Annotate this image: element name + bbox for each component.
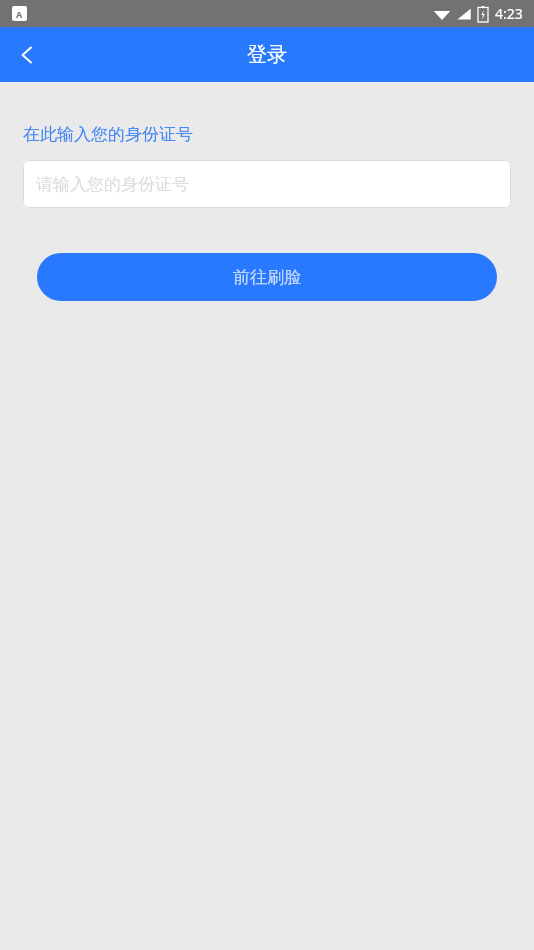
button[interactable]: 前往刷脸 [37, 253, 497, 301]
button[interactable]: Back [0, 28, 54, 82]
staticText: 登录 [247, 42, 287, 67]
staticText: 4:23 [495, 4, 523, 23]
staticText: 请输入您的身份证号 [36, 174, 189, 195]
staticText: 在此输入您的身份证号 [23, 124, 193, 145]
staticText: A [16, 8, 23, 20]
button[interactable]: 请输入您的身份证号 [23, 160, 511, 208]
staticText: 前往刷脸 [233, 267, 301, 288]
